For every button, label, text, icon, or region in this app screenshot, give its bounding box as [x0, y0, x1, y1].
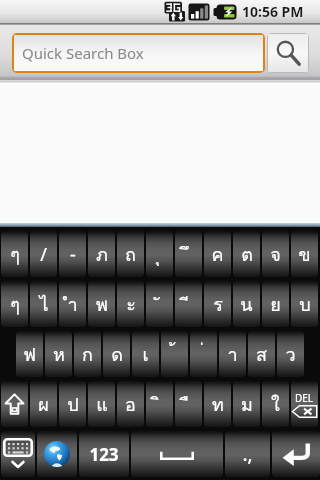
button[interactable]: า [219, 331, 246, 377]
button[interactable]: ๆ [1, 231, 28, 277]
button[interactable]: ข [291, 231, 318, 277]
button[interactable]: ถ [117, 231, 144, 277]
button[interactable]: พ [88, 281, 115, 327]
staticText: ห [53, 340, 65, 369]
staticText: ๆ [10, 240, 20, 269]
staticText: แ [96, 390, 108, 419]
button[interactable]: แ [88, 381, 115, 427]
staticText: ๆ [10, 290, 20, 319]
button[interactable]: ๆ [1, 281, 28, 327]
staticText: พ [96, 290, 108, 319]
staticText: ฟ [23, 340, 36, 369]
staticText: ไ [39, 290, 49, 319]
staticText: ต [241, 240, 253, 269]
button[interactable]: ., [225, 431, 270, 477]
button[interactable]: ท [204, 381, 231, 427]
button[interactable]: ม [233, 381, 260, 427]
button[interactable]: Quick Search Box [14, 35, 263, 71]
button[interactable]: ส [248, 331, 275, 377]
button[interactable]: น [233, 281, 260, 327]
staticText: - [70, 242, 76, 267]
button[interactable]: ึ [175, 231, 202, 277]
staticText: 10:56 PM [242, 2, 304, 21]
button[interactable]: ค [204, 231, 231, 277]
staticText: ด [111, 340, 123, 369]
staticText: ใ [271, 390, 280, 419]
button[interactable]: 123 [79, 431, 129, 477]
staticText: น [240, 290, 253, 319]
button[interactable]: ่ [190, 331, 217, 377]
staticText: 123 [89, 443, 119, 466]
staticText: จ [270, 240, 281, 269]
staticText: / [40, 242, 47, 267]
staticText: ภ [96, 240, 108, 269]
button[interactable]: ะ [117, 281, 144, 327]
button[interactable]: ป [59, 381, 86, 427]
staticText: า [227, 340, 238, 369]
button[interactable]: จ [262, 231, 289, 277]
button[interactable]: ย [262, 281, 289, 327]
staticText: ถ [125, 240, 136, 269]
button[interactable]: ก [74, 331, 101, 377]
button[interactable]: ั [146, 281, 173, 327]
button[interactable]: ุ [146, 231, 173, 277]
button[interactable]: Delete [291, 381, 318, 427]
button[interactable]: ้ [161, 331, 188, 377]
staticText: ข [298, 240, 311, 269]
button[interactable]: ห [45, 331, 72, 377]
button[interactable]: ร [204, 281, 231, 327]
button[interactable]: / [30, 231, 57, 277]
staticText: ผ [38, 390, 49, 419]
staticText: ส [256, 340, 267, 369]
button[interactable]: Change language [37, 431, 77, 477]
staticText: บ [299, 290, 311, 319]
staticText: อ [125, 390, 136, 419]
button[interactable]: Hide keyboard [1, 431, 35, 477]
staticText: ำ [67, 290, 78, 319]
button[interactable]: ไ [30, 281, 57, 327]
button[interactable]: ต [233, 231, 260, 277]
staticText: ย [270, 290, 281, 319]
button[interactable]: ใ [262, 381, 289, 427]
staticText: เ [142, 340, 149, 369]
staticText: ว [285, 340, 296, 369]
button[interactable]: ผ [30, 381, 57, 427]
staticText: ค [211, 240, 224, 269]
staticText: ., [242, 441, 253, 467]
staticText: ก [82, 340, 93, 369]
button[interactable]: ฟ [16, 331, 43, 377]
button[interactable]: ี [175, 281, 202, 327]
button[interactable]: Shift [1, 381, 28, 427]
button[interactable]: ภ [88, 231, 115, 277]
button[interactable]: ำ [59, 281, 86, 327]
button[interactable]: บ [291, 281, 318, 327]
staticText: ป [67, 390, 79, 419]
button[interactable]: Space [131, 431, 223, 477]
button[interactable]: ิ [146, 381, 173, 427]
button[interactable]: Enter [272, 431, 320, 477]
button[interactable]: ด [103, 331, 130, 377]
button[interactable]: ื [175, 381, 202, 427]
button[interactable]: อ [117, 381, 144, 427]
button[interactable]: - [59, 231, 86, 277]
staticText: ร [213, 290, 223, 319]
staticText: ท [212, 390, 224, 419]
button[interactable]: เ [132, 331, 159, 377]
staticText: DEL [295, 391, 314, 405]
button[interactable]: ว [277, 331, 304, 377]
button[interactable]: Search [268, 34, 308, 72]
staticText: ะ [126, 290, 136, 319]
staticText: ม [241, 390, 253, 419]
staticText: Quick Search Box [22, 43, 144, 63]
